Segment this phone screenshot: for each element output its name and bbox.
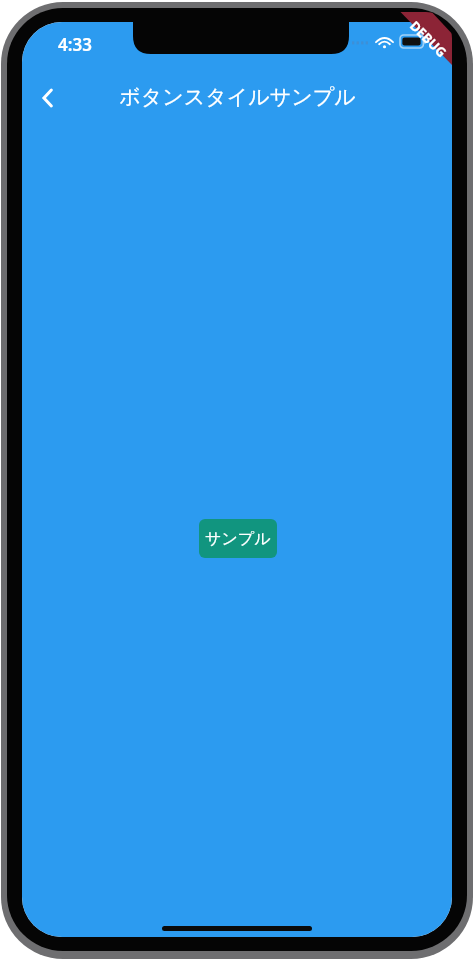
button[interactable]: サンプル	[199, 519, 277, 558]
staticText: サンプル	[205, 529, 271, 549]
staticText: 4:33	[58, 33, 92, 56]
staticText: DEBUG	[406, 17, 451, 61]
button[interactable]: Back	[26, 76, 70, 120]
staticText: ボタンスタイルサンプル	[119, 84, 356, 110]
